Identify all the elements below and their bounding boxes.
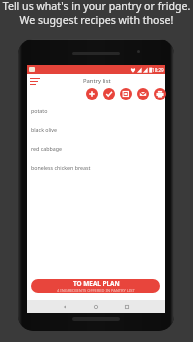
button[interactable]: Send by e-mail (137, 88, 149, 100)
button[interactable]: black olive (27, 120, 165, 139)
staticText: Tell us what's in your pantry or fridge. (0, 0, 193, 13)
staticText: red cabbage (31, 145, 62, 152)
button[interactable]: Add item (86, 88, 98, 100)
staticText: 18:29 (152, 67, 164, 73)
staticText: boneless chicken breast (31, 164, 91, 171)
staticText: We suggest recipes with those! (0, 13, 193, 27)
button[interactable]: Scan barcode (120, 88, 132, 100)
staticText: potato (31, 107, 48, 114)
button[interactable]: Menu (30, 78, 40, 85)
button[interactable]: boneless chicken breast (27, 158, 165, 177)
button[interactable]: potato (27, 101, 165, 120)
staticText: Pantry list (83, 77, 111, 85)
button[interactable]: red cabbage (27, 139, 165, 158)
button[interactable]: Back (60, 302, 70, 312)
staticText: TO MEAL PLAN (73, 279, 120, 288)
button[interactable]: Home (91, 302, 101, 312)
staticText: black olive (31, 126, 57, 133)
staticText: 4 INGREDIENTS OFFERED IN PANTRY LIST (57, 288, 135, 293)
button[interactable]: Print list (154, 88, 166, 100)
button[interactable]: TO MEAL PLAN (31, 279, 160, 293)
button[interactable]: Select all (103, 88, 115, 100)
button[interactable]: Recent apps (122, 302, 132, 312)
